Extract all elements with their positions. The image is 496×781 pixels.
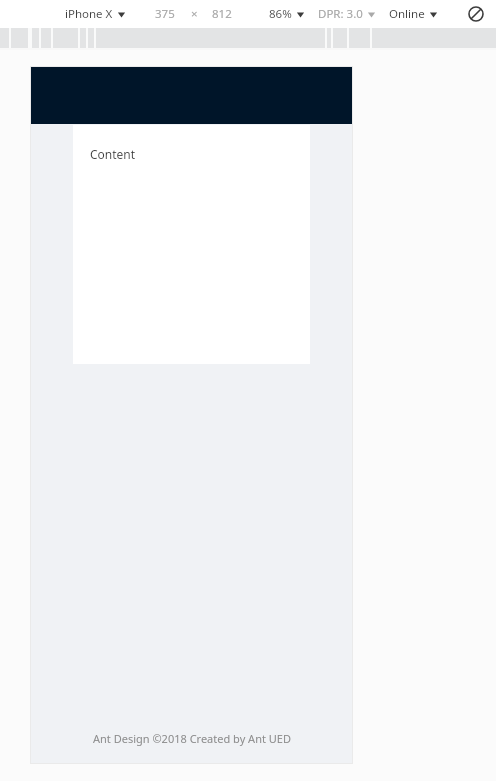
button[interactable]: Network throttling — [465, 3, 487, 25]
staticText: Content — [90, 146, 136, 162]
staticText: iPhone X — [65, 6, 113, 22]
button[interactable]: DPR: 3.0 — [315, 4, 379, 24]
button[interactable]: iPhone X — [62, 4, 129, 24]
button[interactable]: 375 — [153, 6, 177, 22]
staticText: 86% — [269, 6, 292, 22]
staticText: Ant Design ©2018 Created by Ant UED — [93, 731, 291, 746]
button[interactable] — [30, 66, 353, 124]
button[interactable]: Online — [386, 4, 441, 24]
staticText: DPR: 3.0 — [318, 6, 363, 22]
button[interactable]: 812 — [210, 6, 234, 22]
button[interactable]: 86% — [266, 4, 308, 24]
staticText: × — [191, 6, 198, 22]
button[interactable]: Content — [73, 125, 310, 364]
staticText: Online — [389, 6, 425, 22]
